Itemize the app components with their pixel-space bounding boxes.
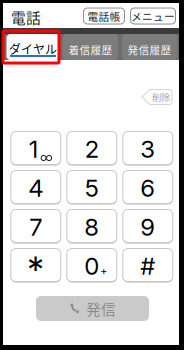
button[interactable]: 6 (123, 170, 173, 204)
staticText: + (100, 265, 107, 277)
staticText: ダイヤル (9, 40, 57, 57)
button[interactable]: * (11, 248, 61, 282)
staticText: * (27, 249, 44, 291)
staticText: 2 (85, 134, 99, 163)
button[interactable]: 8 (67, 209, 117, 243)
button[interactable]: # (123, 248, 173, 282)
button[interactable]: 電話帳 (83, 8, 124, 24)
button[interactable]: 4 (11, 170, 61, 204)
staticText: メニュー (131, 8, 175, 24)
button[interactable]: 3 (123, 131, 173, 165)
staticText: 7 (29, 212, 42, 241)
staticText: 9 (140, 212, 155, 241)
button[interactable]: 5 (67, 170, 117, 204)
staticText: 着信履歴 (68, 42, 112, 57)
staticText: 電話帳 (87, 8, 120, 24)
staticText: 発信 (86, 298, 116, 319)
button[interactable]: 着信履歴 (62, 34, 118, 60)
staticText: 1 (29, 134, 39, 163)
staticText: 5 (85, 173, 99, 202)
staticText: 3 (140, 134, 155, 163)
staticText: 電話 (11, 6, 41, 28)
button[interactable]: 削除 (141, 88, 173, 105)
staticText: 6 (140, 173, 155, 202)
staticText: 8 (84, 212, 99, 241)
staticText: 発信履歴 (127, 42, 171, 57)
staticText: 0 (84, 251, 99, 280)
button[interactable]: 2 (67, 131, 117, 165)
staticText: 4 (28, 173, 43, 202)
button[interactable]: 発信履歴 (121, 34, 177, 60)
button[interactable]: 9 (123, 209, 173, 243)
button[interactable]: 0 (67, 248, 117, 282)
staticText: # (140, 251, 155, 280)
button[interactable]: 7 (11, 209, 61, 243)
button[interactable]: ダイヤル (6, 34, 59, 60)
staticText: 削除 (152, 90, 170, 104)
button[interactable]: 発信 (36, 296, 149, 321)
button[interactable]: 1 (11, 131, 61, 165)
button[interactable]: メニュー (130, 8, 175, 24)
